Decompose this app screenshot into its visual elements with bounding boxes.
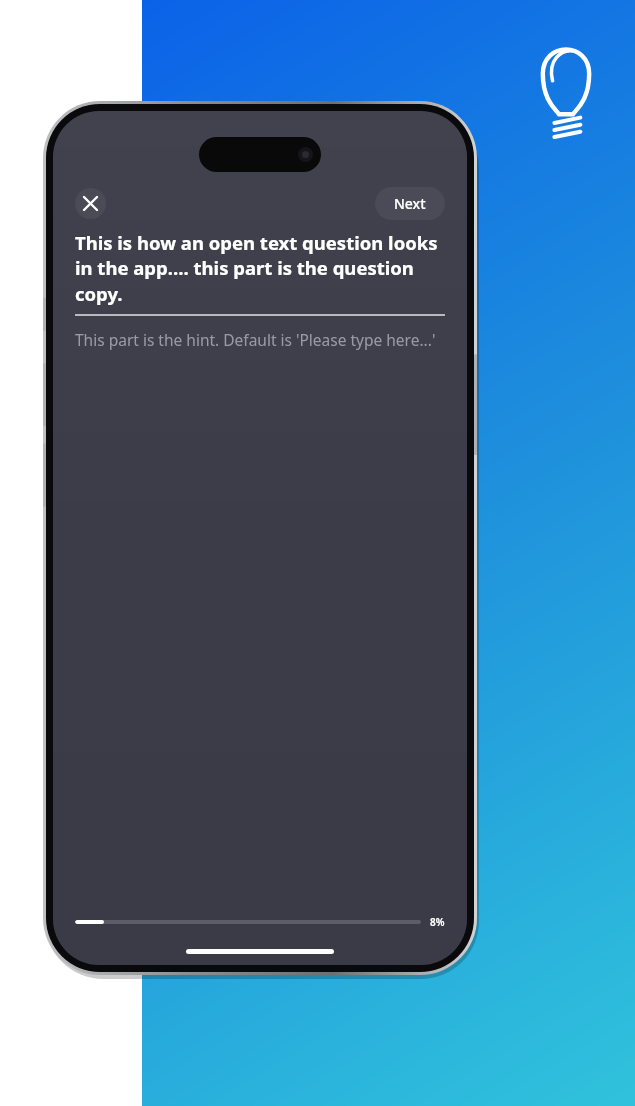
- button[interactable]: Close: [75, 188, 106, 219]
- button[interactable]: Next: [375, 187, 445, 220]
- staticText: This part is the hint. Default is 'Pleas…: [75, 329, 436, 350]
- staticText: Next: [394, 194, 426, 213]
- other: Lightbulb logo: [528, 40, 604, 138]
- staticText: This is how an open text question looks …: [75, 230, 445, 307]
- staticText: 8%: [430, 915, 445, 929]
